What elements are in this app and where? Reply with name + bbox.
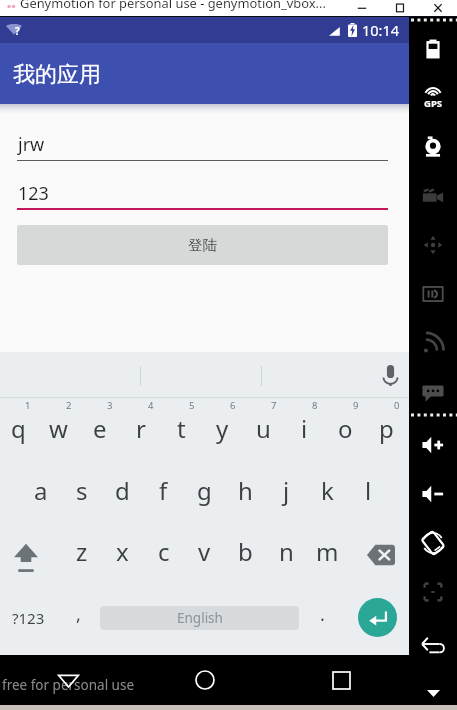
button[interactable]: Rotate: [409, 518, 457, 567]
button[interactable]: Video recorder: [409, 171, 457, 220]
staticText: 1: [25, 399, 31, 412]
button[interactable]: jrw: [17, 132, 388, 161]
staticText: v: [198, 535, 211, 568]
button[interactable]: f: [143, 460, 184, 522]
staticText: c: [158, 535, 170, 568]
staticText: j: [283, 474, 290, 507]
button[interactable]: d: [102, 460, 143, 522]
button[interactable]: Maximize: [381, 0, 419, 17]
button[interactable]: 4: [122, 398, 163, 460]
staticText: p: [379, 412, 394, 445]
staticText: m: [316, 535, 339, 568]
staticText: n: [279, 535, 294, 568]
button[interactable]: k: [307, 460, 348, 522]
button[interactable]: Close: [419, 0, 457, 17]
button[interactable]: Voice input: [373, 358, 407, 392]
staticText: w: [49, 412, 68, 445]
staticText: 4: [148, 399, 154, 412]
button[interactable]: Enter: [358, 598, 397, 637]
staticText: o: [338, 412, 353, 445]
staticText: jrw: [18, 132, 45, 157]
button[interactable]: 3: [81, 398, 122, 460]
button[interactable]: Back: [409, 619, 457, 668]
staticText: b: [238, 535, 253, 568]
staticText: g: [197, 474, 212, 507]
button[interactable]: s: [61, 460, 102, 522]
staticText: a: [34, 474, 48, 507]
button[interactable]: 123: [17, 181, 388, 210]
button[interactable]: Backspace: [348, 522, 409, 584]
staticText: 9: [353, 399, 359, 412]
button[interactable]: ?123: [0, 584, 56, 655]
button[interactable]: j: [266, 460, 307, 522]
staticText: Genymotion for personal use - genymotion…: [20, 0, 326, 11]
button[interactable]: Recents: [273, 655, 409, 705]
staticText: q: [11, 412, 26, 445]
staticText: e: [93, 412, 107, 445]
staticText: 5: [189, 399, 195, 412]
button[interactable]: Minimize: [343, 0, 381, 17]
button[interactable]: English: [100, 606, 299, 630]
button[interactable]: 7: [245, 398, 286, 460]
button[interactable]: c: [143, 522, 184, 584]
staticText: ?: [15, 24, 20, 38]
button[interactable]: Back: [0, 655, 137, 705]
button[interactable]: 1: [0, 398, 40, 460]
button[interactable]: .: [299, 584, 345, 655]
button[interactable]: ,: [56, 584, 100, 655]
button[interactable]: Battery: [409, 24, 457, 73]
staticText: u: [256, 412, 271, 445]
button[interactable]: z: [61, 522, 102, 584]
staticText: k: [321, 474, 334, 507]
staticText: r: [136, 412, 146, 445]
button[interactable]: Network: [409, 318, 457, 367]
staticText: 8: [312, 399, 318, 412]
button[interactable]: l: [348, 460, 389, 522]
staticText: .: [320, 602, 325, 627]
button[interactable]: Fullscreen: [409, 567, 457, 616]
button[interactable]: Home: [137, 655, 273, 705]
button[interactable]: g: [184, 460, 225, 522]
staticText: y: [216, 412, 229, 445]
button[interactable]: Move: [409, 220, 457, 269]
button[interactable]: 6: [204, 398, 245, 460]
button[interactable]: a: [20, 460, 61, 522]
button[interactable]: Shift: [0, 522, 61, 584]
button[interactable]: 8: [286, 398, 327, 460]
button[interactable]: m: [307, 522, 348, 584]
button[interactable]: 登陆: [17, 225, 388, 265]
staticText: 2: [66, 399, 72, 412]
button[interactable]: 5: [163, 398, 204, 460]
staticText: English: [177, 609, 223, 627]
button[interactable]: GPS: [409, 73, 457, 122]
staticText: ,: [76, 602, 81, 627]
staticText: free for personal use: [2, 676, 135, 694]
button[interactable]: Messages: [409, 367, 457, 416]
button[interactable]: n: [266, 522, 307, 584]
button[interactable]: Volume up: [409, 420, 457, 469]
staticText: f: [159, 474, 168, 507]
staticText: 6: [230, 399, 236, 412]
staticText: 0: [394, 399, 400, 412]
button[interactable]: x: [102, 522, 143, 584]
button[interactable]: Identifiers: [409, 269, 457, 318]
staticText: z: [76, 535, 88, 568]
button[interactable]: h: [225, 460, 266, 522]
button[interactable]: Volume down: [409, 469, 457, 518]
staticText: l: [365, 474, 372, 507]
staticText: 10:14: [362, 20, 400, 40]
staticText: 7: [271, 399, 277, 412]
staticText: 我的应用: [13, 61, 101, 89]
button[interactable]: 0: [368, 398, 409, 460]
button[interactable]: 9: [327, 398, 368, 460]
button[interactable]: More: [422, 682, 444, 704]
button[interactable]: Camera: [409, 122, 457, 171]
staticText: 3: [107, 399, 113, 412]
button[interactable]: b: [225, 522, 266, 584]
staticText: s: [76, 474, 88, 507]
staticText: i: [301, 412, 308, 445]
staticText: ?123: [12, 608, 45, 628]
button[interactable]: 2: [40, 398, 81, 460]
button[interactable]: v: [184, 522, 225, 584]
staticText: x: [116, 535, 129, 568]
